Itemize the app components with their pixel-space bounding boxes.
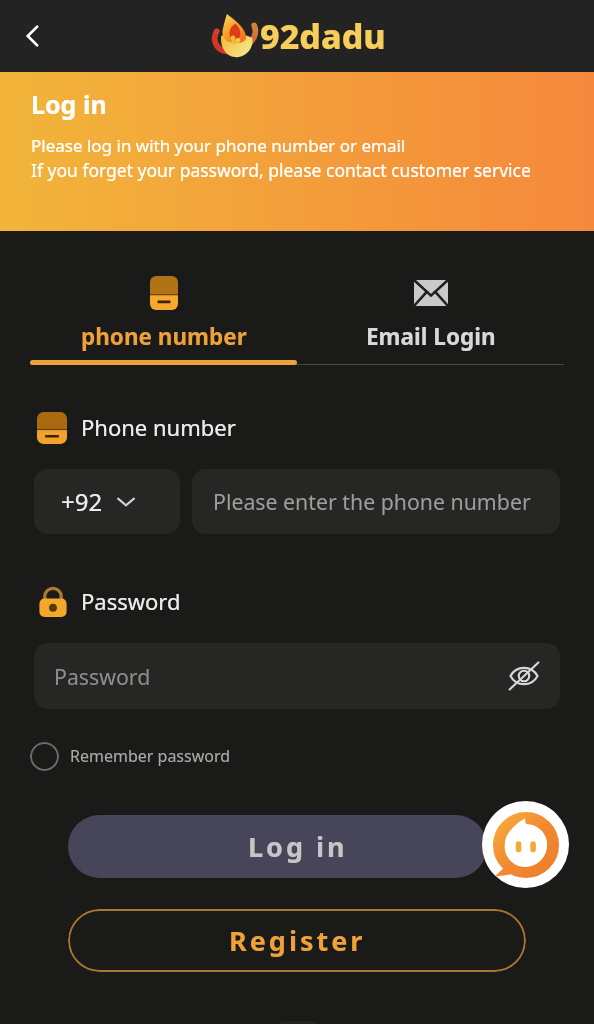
staticText: Phone number	[81, 412, 236, 442]
button[interactable]: Remember password	[30, 740, 231, 772]
staticText: Please enter the phone number	[213, 487, 531, 516]
staticText: Log in	[248, 828, 348, 865]
staticText: Log in	[31, 87, 107, 121]
button[interactable]: Password	[34, 643, 560, 709]
staticText: Password	[54, 662, 151, 691]
button[interactable]: Show password	[504, 656, 544, 696]
button[interactable]: Register	[68, 909, 526, 972]
staticText: Password	[81, 586, 181, 616]
staticText: Remember password	[70, 745, 231, 767]
staticText: +92	[61, 485, 103, 518]
button[interactable]: Customer service	[482, 801, 569, 888]
button[interactable]: phone number	[30, 266, 297, 360]
staticText: If you forget your password, please cont…	[31, 158, 531, 182]
staticText: phone number	[81, 321, 247, 351]
staticText: Please log in with your phone number or …	[31, 134, 406, 157]
staticText: 92dadu	[260, 13, 386, 59]
staticText: Email Login	[366, 321, 496, 351]
button[interactable]: Back	[11, 14, 55, 58]
staticText: Register	[229, 922, 366, 959]
button[interactable]: Email Login	[297, 266, 564, 360]
button[interactable]: Log in	[68, 815, 487, 878]
button[interactable]: +92	[34, 469, 180, 534]
button[interactable]: Please enter the phone number	[192, 469, 560, 534]
